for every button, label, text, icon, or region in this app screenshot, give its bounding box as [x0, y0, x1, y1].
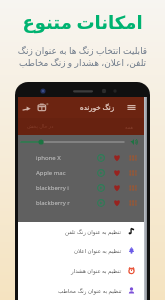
staticText: تنظیم به عنوان هشدار	[71, 267, 122, 274]
staticText: blackberry r	[36, 199, 70, 207]
button[interactable]: Favourite	[113, 154, 121, 162]
button[interactable]: Options	[129, 199, 137, 207]
button[interactable]: Play	[97, 169, 105, 177]
staticText: Apple mac	[36, 169, 66, 177]
button[interactable]: blackberry i	[18, 180, 144, 195]
staticText: تنظیم به عنوان زنگ مخاطب	[58, 287, 122, 294]
button[interactable]: Volume	[130, 138, 138, 146]
button[interactable]: Options	[129, 184, 137, 192]
button[interactable]: Menu	[127, 103, 136, 112]
button[interactable]: تنظیم به عنوان زنگ تلفن	[18, 222, 144, 241]
button[interactable]: Favourite	[113, 169, 121, 177]
button[interactable]: Play	[97, 199, 105, 207]
button[interactable]: Favourite	[113, 199, 121, 207]
button[interactable]: Options	[129, 169, 137, 177]
staticText: زنگ خورنده	[80, 103, 115, 113]
staticText: blackberry i	[36, 184, 69, 192]
staticText: قابلیت انتخاب زنگ ها به عنوان زنگ تلفن، …	[0, 44, 165, 68]
button[interactable]: Apple mac	[18, 165, 144, 180]
staticText: همه	[125, 124, 134, 130]
staticText: تنظیم به عنوان اعلان	[74, 247, 122, 254]
button[interactable]: iphone X	[18, 150, 144, 165]
staticText: iphone X	[36, 154, 61, 162]
button[interactable]: تنظیم به عنوان اعلان	[18, 241, 144, 260]
button[interactable]: Play	[97, 154, 105, 162]
button[interactable]: تنظیم به عنوان زنگ مخاطب	[18, 280, 144, 300]
button[interactable]: Share	[22, 103, 32, 113]
button[interactable]: Options	[129, 154, 137, 162]
button[interactable]: تنظیم به عنوان هشدار	[18, 260, 144, 280]
button[interactable]: blackberry r	[18, 195, 144, 210]
staticText: امکانات متنوع	[0, 10, 165, 35]
staticText: در حال پخش	[27, 123, 54, 130]
staticText: تنظیم به عنوان زنگ تلفن	[65, 228, 122, 235]
button[interactable]: Delete	[37, 102, 48, 113]
button[interactable]: Play	[97, 184, 105, 192]
button[interactable]: Favourite	[113, 184, 121, 192]
